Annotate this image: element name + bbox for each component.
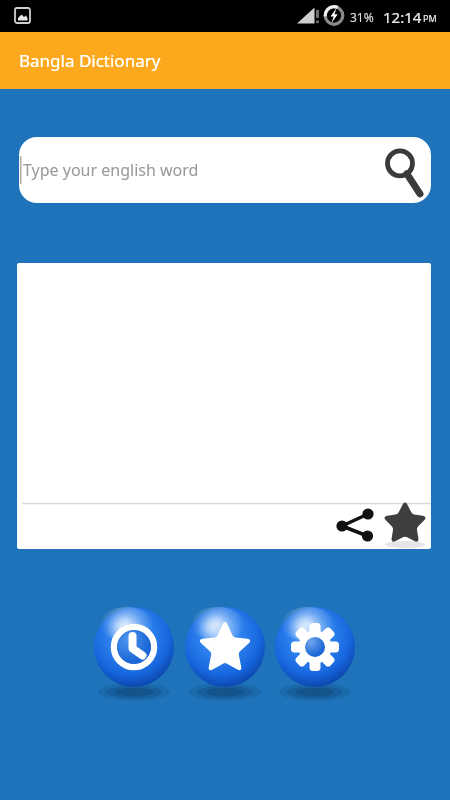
staticText: Bangla Dictionary xyxy=(19,49,161,72)
button[interactable] xyxy=(92,603,176,699)
button[interactable] xyxy=(382,501,428,547)
button[interactable] xyxy=(333,503,377,547)
staticText: PM xyxy=(423,12,437,24)
button[interactable] xyxy=(273,603,357,699)
staticText: 12:14 xyxy=(383,7,422,27)
staticText: 31% xyxy=(350,9,374,25)
button[interactable] xyxy=(183,603,267,699)
button[interactable]: Type your english word xyxy=(19,137,431,203)
staticText: Type your english word xyxy=(23,159,199,181)
